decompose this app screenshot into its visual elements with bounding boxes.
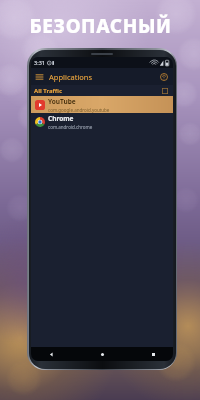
button[interactable]: Back (45, 348, 57, 360)
staticText: YouTube (48, 97, 76, 106)
button[interactable]: Open navigation menu (33, 71, 45, 83)
staticText: 3:31 (34, 59, 45, 66)
staticText: com.android.chrome (48, 124, 93, 130)
staticText: Chrome (48, 114, 74, 123)
button[interactable]: Recent apps (147, 348, 159, 360)
staticText: БЕЗОПАСНЫЙ (29, 13, 172, 39)
button[interactable]: Chrome (31, 113, 173, 130)
staticText: Applications (49, 72, 93, 82)
button[interactable]: YouTube (31, 96, 173, 113)
button[interactable]: Home (96, 348, 108, 360)
staticText: com.google.android.youtube (48, 107, 110, 113)
staticText: All Traffic (34, 87, 63, 95)
button[interactable]: All Traffic (31, 85, 173, 96)
button[interactable]: Help (158, 71, 170, 83)
